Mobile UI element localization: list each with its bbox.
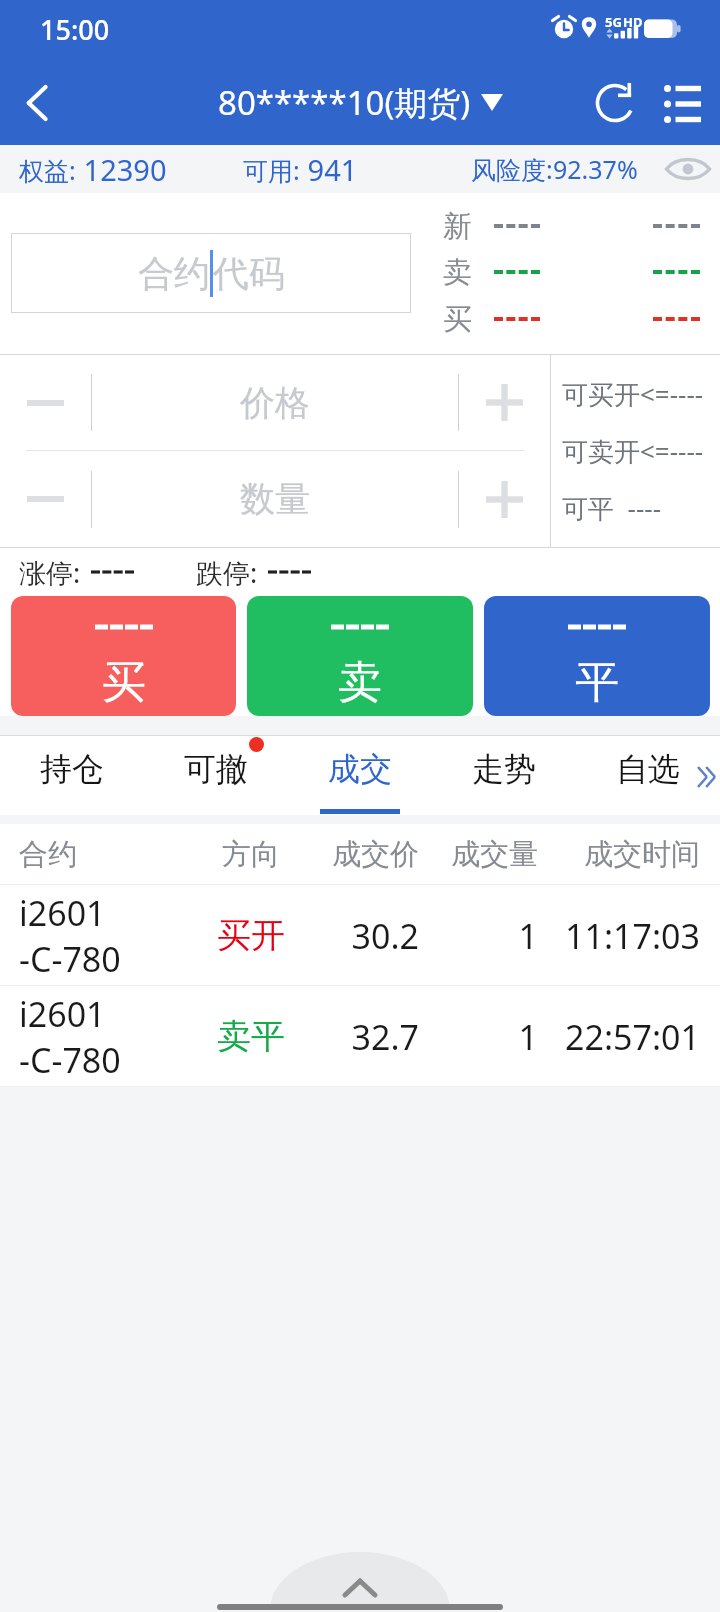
button[interactable]: 成交 bbox=[288, 735, 432, 815]
staticText: 成交时间 bbox=[538, 836, 700, 873]
staticText: 可撤 bbox=[184, 749, 248, 789]
staticText: 走势 bbox=[472, 749, 536, 789]
button[interactable]: Menu bbox=[644, 60, 720, 145]
staticText: 代码 bbox=[213, 251, 285, 296]
staticText: 合约 bbox=[138, 251, 210, 296]
staticText: 买开 bbox=[191, 914, 311, 957]
staticText: 持仓 bbox=[40, 749, 104, 789]
staticText: 80*****10(期货) bbox=[218, 80, 471, 125]
staticText: 22:57:01 bbox=[538, 1014, 700, 1060]
staticText: 成交 bbox=[328, 749, 392, 789]
button[interactable]: 平 bbox=[484, 596, 710, 716]
button[interactable]: Refresh bbox=[568, 60, 644, 145]
staticText: 涨停: bbox=[19, 554, 81, 591]
button[interactable]: 80*****10(期货) bbox=[212, 80, 509, 125]
staticText: 成交价 bbox=[311, 836, 419, 873]
staticText: 可用: bbox=[243, 153, 300, 187]
staticText: 卖平 bbox=[191, 1015, 311, 1058]
staticText: 32.7 bbox=[311, 1014, 419, 1060]
button[interactable]: 自选 bbox=[576, 735, 720, 815]
staticText: 权益: bbox=[19, 153, 76, 187]
staticText: 方向 bbox=[191, 836, 311, 873]
button[interactable]: Back bbox=[0, 60, 76, 145]
button[interactable]: 卖 bbox=[247, 596, 473, 716]
staticText: 15:00 bbox=[40, 11, 110, 48]
staticText: 11:17:03 bbox=[538, 913, 700, 959]
staticText: 自选 bbox=[616, 749, 680, 789]
button[interactable]: 买 bbox=[11, 596, 236, 716]
staticText: 价格 bbox=[240, 381, 310, 425]
staticText: 30.2 bbox=[311, 913, 419, 959]
staticText: 5G bbox=[605, 13, 622, 31]
staticText: 可平 ---- bbox=[562, 490, 662, 526]
button[interactable]: 可撤 bbox=[144, 735, 288, 815]
staticText: 卖 bbox=[338, 655, 382, 710]
staticText: 成交量 bbox=[419, 836, 538, 873]
staticText: -C-780 bbox=[19, 1037, 121, 1083]
button[interactable]: Toggle balance visibility bbox=[655, 145, 720, 193]
button[interactable]: 走势 bbox=[432, 735, 576, 815]
staticText: 新 bbox=[443, 208, 472, 245]
button[interactable]: 价格 bbox=[92, 355, 458, 450]
staticText: 风险度: bbox=[471, 152, 553, 186]
button[interactable]: i2601 bbox=[0, 986, 720, 1087]
staticText: 92.37% bbox=[553, 152, 638, 186]
button[interactable]: Increase 数量 bbox=[459, 451, 550, 547]
button[interactable]: Decrease 价格 bbox=[0, 355, 91, 450]
staticText: 12390 bbox=[76, 150, 167, 189]
staticText: 1 bbox=[419, 1014, 538, 1060]
button[interactable]: i2601 bbox=[0, 885, 720, 986]
button[interactable]: 数量 bbox=[92, 451, 458, 547]
staticText: 可买开<=---- bbox=[562, 376, 704, 412]
staticText: HD bbox=[623, 13, 643, 31]
staticText: 买 bbox=[102, 655, 146, 710]
button[interactable]: 合约 bbox=[11, 233, 411, 313]
staticText: 数量 bbox=[240, 477, 310, 521]
staticText: -C-780 bbox=[19, 936, 121, 982]
staticText: 平 bbox=[575, 655, 619, 710]
staticText: 可卖开<=---- bbox=[562, 433, 704, 469]
staticText: 合约 bbox=[19, 836, 191, 873]
staticText: 卖 bbox=[443, 254, 472, 291]
staticText: 941 bbox=[300, 150, 358, 189]
staticText: i2601 bbox=[19, 991, 106, 1037]
button[interactable]: Increase 价格 bbox=[459, 355, 550, 450]
button[interactable]: More tabs bbox=[693, 735, 720, 815]
button[interactable]: 持仓 bbox=[0, 735, 144, 815]
button[interactable]: Decrease 数量 bbox=[0, 451, 91, 547]
staticText: 1 bbox=[419, 913, 538, 959]
staticText: i2601 bbox=[19, 890, 106, 936]
staticText: 买 bbox=[443, 301, 472, 338]
staticText: 跌停: bbox=[196, 554, 258, 591]
